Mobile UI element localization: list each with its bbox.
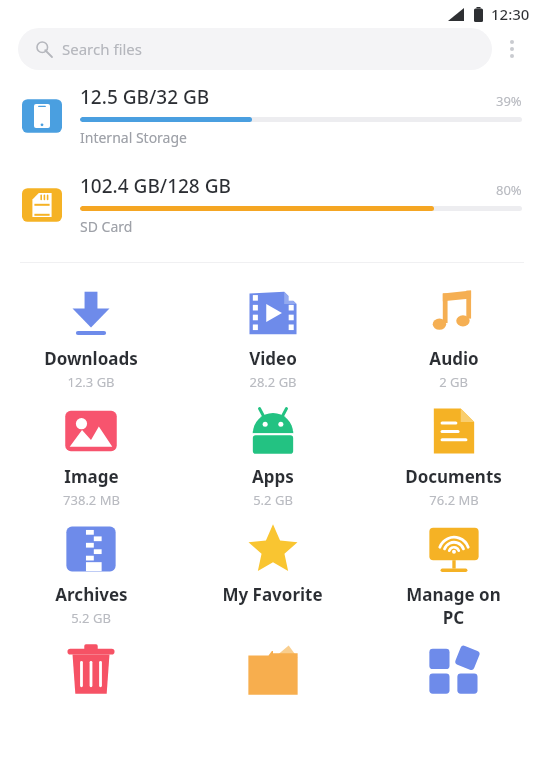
staticText: 28.2 GB	[249, 373, 297, 391]
staticText: 12.3 GB	[67, 373, 115, 391]
button[interactable]: Video	[182, 279, 363, 397]
staticText: Manage on PC	[406, 583, 501, 629]
staticText: Downloads	[44, 347, 138, 370]
button[interactable]: 102.4 GB/128 GB	[0, 173, 544, 236]
staticText: 76.2 MB	[429, 491, 479, 509]
staticText: Documents	[405, 465, 502, 488]
staticText: 5.2 GB	[253, 491, 293, 509]
staticText: 80%	[496, 181, 522, 199]
staticText: 738.2 MB	[63, 491, 120, 509]
staticText: Image	[64, 465, 119, 488]
staticText: 12.5 GB/32 GB	[80, 84, 210, 110]
staticText: 39%	[496, 92, 522, 110]
staticText: Archives	[55, 583, 128, 606]
staticText: Search files	[62, 39, 142, 59]
staticText: Video	[249, 347, 297, 370]
staticText: My Favorite	[222, 583, 323, 606]
staticText: SD Card	[80, 217, 133, 236]
button[interactable]: Downloads	[0, 279, 182, 397]
staticText: 5.2 GB	[71, 609, 111, 627]
button[interactable]: More options	[492, 29, 532, 69]
button[interactable]: Audio	[363, 279, 544, 397]
button[interactable]: Image	[0, 397, 182, 515]
staticText: Apps	[252, 465, 294, 488]
staticText: 2 GB	[439, 373, 468, 391]
button[interactable]: Search files	[18, 28, 492, 70]
staticText: 102.4 GB/128 GB	[80, 173, 231, 199]
button[interactable]: Documents	[363, 397, 544, 515]
staticText: 12:30	[491, 4, 530, 24]
button[interactable]: My Favorite	[182, 515, 363, 612]
button[interactable]: Archives	[0, 515, 182, 633]
button[interactable]	[182, 635, 363, 703]
staticText: Audio	[429, 347, 479, 370]
button[interactable]	[0, 635, 182, 703]
staticText: Internal Storage	[80, 128, 187, 147]
button[interactable]: 12.5 GB/32 GB	[0, 84, 544, 147]
button[interactable]: Apps	[182, 397, 363, 515]
button[interactable]: Manage on PC	[363, 515, 544, 635]
button[interactable]	[363, 635, 544, 703]
